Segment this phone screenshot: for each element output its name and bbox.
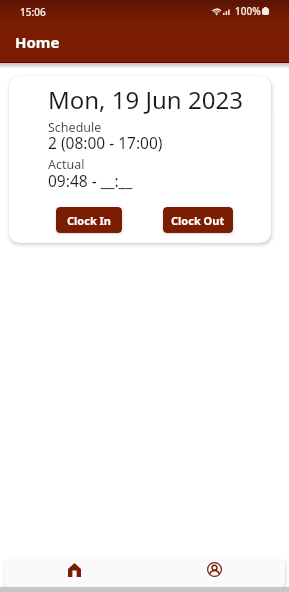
staticText: 15:06 xyxy=(20,5,46,19)
staticText: Home xyxy=(15,32,60,52)
staticText: Mon, 19 Jun 2023 xyxy=(48,83,243,116)
staticText: Schedule xyxy=(48,119,102,136)
button[interactable]: Profile xyxy=(144,560,285,587)
staticText: 2 (08:00 - 17:00) xyxy=(48,132,163,153)
button[interactable]: Clock Out xyxy=(163,207,233,233)
button[interactable]: Clock In xyxy=(56,207,122,233)
staticText: 09:48 - __:__ xyxy=(48,170,133,191)
staticText: Clock In xyxy=(67,213,111,228)
staticText: Clock Out xyxy=(171,213,225,228)
staticText: 100% xyxy=(235,4,261,18)
button[interactable]: Home xyxy=(4,560,144,587)
staticText: Actual xyxy=(48,156,85,173)
